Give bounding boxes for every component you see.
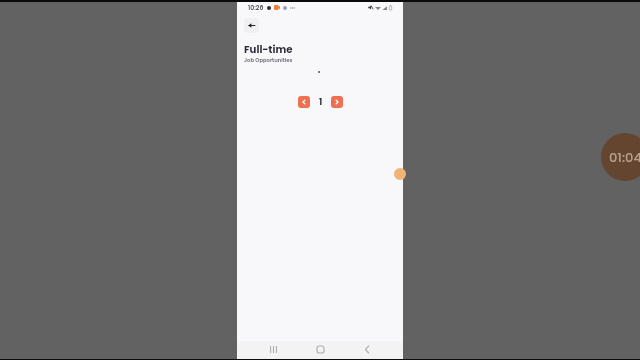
staticText: 1 xyxy=(319,96,323,108)
staticText: Full-time xyxy=(244,42,293,56)
staticText: 10:26 xyxy=(248,3,264,12)
staticText: 01:04 xyxy=(609,148,640,166)
button[interactable]: Next page xyxy=(331,96,343,108)
button[interactable]: Recent apps xyxy=(253,340,293,358)
staticText: Job Opportunities xyxy=(244,56,293,63)
button[interactable]: Previous page xyxy=(298,96,310,108)
button[interactable]: Back xyxy=(347,340,387,358)
button[interactable]: Back xyxy=(244,18,259,33)
button[interactable]: Home xyxy=(300,340,340,358)
